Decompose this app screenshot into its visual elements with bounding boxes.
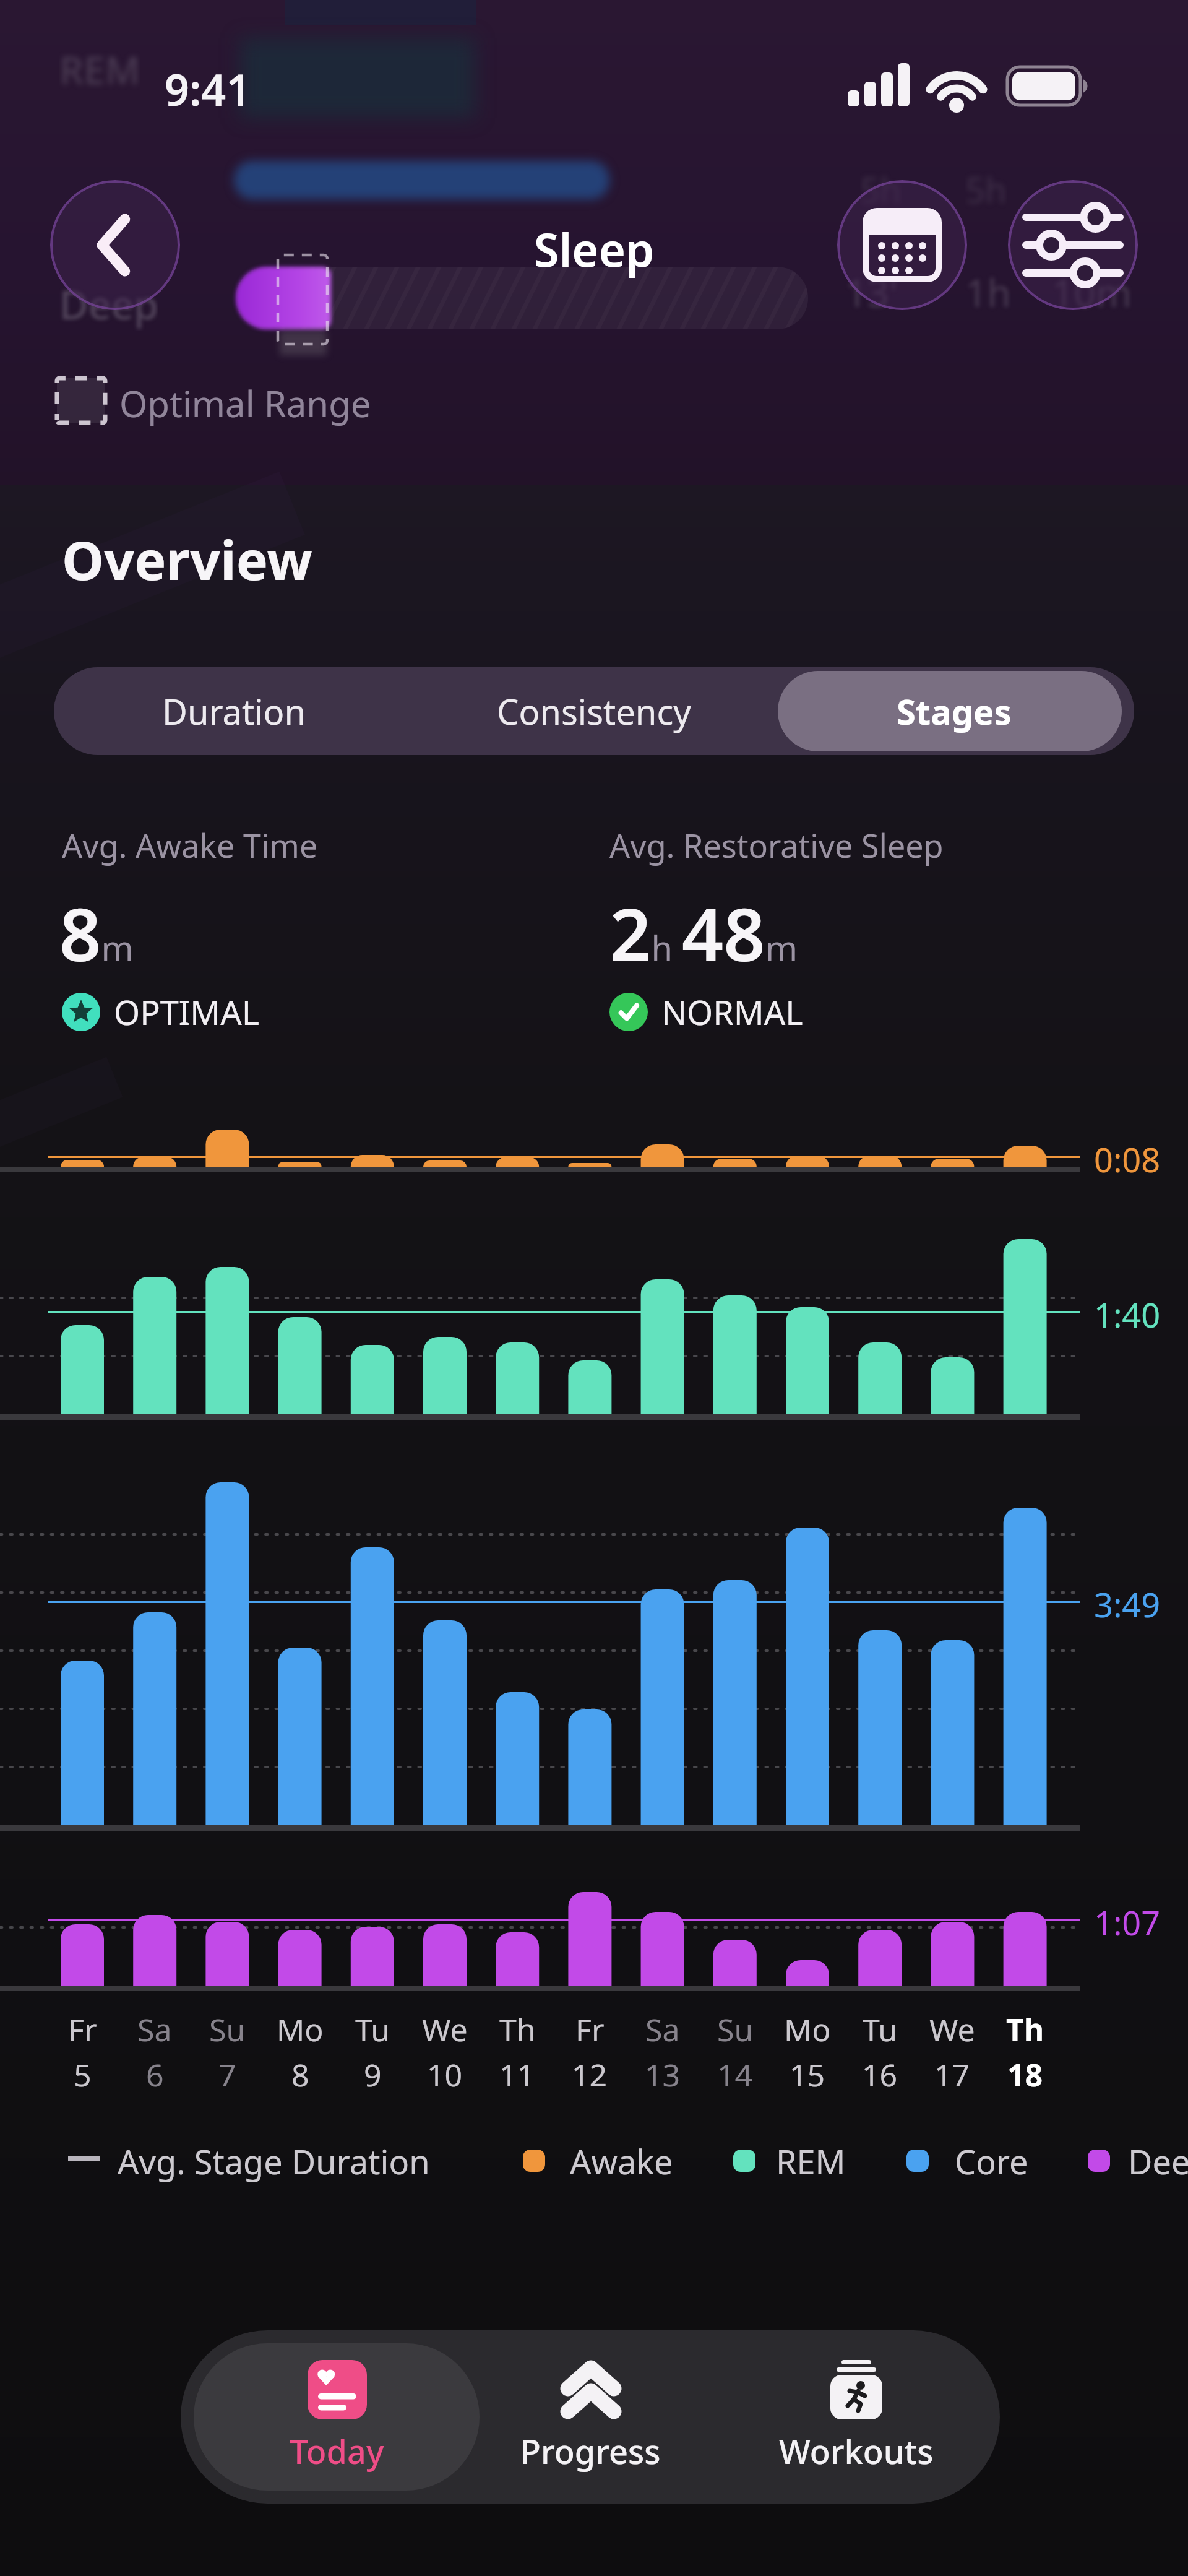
- button[interactable]: Workouts: [725, 2330, 988, 2504]
- staticText: 1h: [965, 266, 1011, 318]
- staticText: OPTIMAL: [114, 989, 259, 1035]
- staticText: Deep: [59, 277, 158, 331]
- button[interactable]: Progress: [467, 2330, 714, 2504]
- staticText: 9:41: [165, 59, 251, 118]
- staticText: Core: [955, 2138, 1028, 2184]
- staticText: 13': [845, 266, 898, 318]
- staticText: 13: [645, 2054, 681, 2096]
- staticText: 10: [427, 2054, 463, 2096]
- staticText: 5h: [860, 166, 902, 213]
- staticText: Stages: [897, 688, 1012, 735]
- button[interactable]: [1008, 180, 1138, 310]
- staticText: Awake: [570, 2138, 673, 2184]
- staticText: Sleep: [0, 218, 1188, 280]
- staticText: 3:49: [1094, 1581, 1161, 1627]
- staticText: 18: [1007, 2054, 1043, 2096]
- staticText: 0:08: [1094, 1136, 1161, 1182]
- staticText: Tu: [355, 2008, 390, 2051]
- staticText: 10m: [1052, 266, 1132, 318]
- staticText: Avg. Stage Duration: [118, 2138, 430, 2184]
- staticText: Su: [209, 2008, 246, 2051]
- staticText: 8: [291, 2054, 309, 2096]
- staticText: Mo: [277, 2008, 324, 2051]
- staticText: 15: [790, 2054, 825, 2096]
- staticText: 5h: [965, 166, 1007, 213]
- staticText: We: [929, 2008, 975, 2051]
- staticText: Consistency: [497, 688, 691, 735]
- staticText: We: [422, 2008, 468, 2051]
- button[interactable]: [778, 671, 1122, 751]
- staticText: Today: [290, 2428, 384, 2474]
- staticText: Su: [717, 2008, 754, 2051]
- staticText: Workouts: [779, 2428, 934, 2474]
- staticText: Sa: [137, 2008, 172, 2051]
- staticText: Avg. Awake Time: [62, 823, 318, 867]
- staticText: 2h 48m: [609, 883, 798, 983]
- staticText: 5: [74, 2054, 92, 2096]
- staticText: NORMAL: [661, 989, 803, 1035]
- staticText: Duration: [162, 688, 306, 735]
- staticText: 6: [146, 2054, 164, 2096]
- button[interactable]: [50, 180, 180, 310]
- button[interactable]: Today: [194, 2343, 480, 2491]
- staticText: Progress: [520, 2428, 661, 2474]
- staticText: Th: [499, 2008, 536, 2051]
- staticText: 1:07: [1094, 1900, 1161, 1945]
- staticText: Avg. Restorative Sleep: [609, 823, 944, 867]
- staticText: 16: [862, 2054, 898, 2096]
- staticText: 14: [717, 2054, 753, 2096]
- staticText: Overview: [62, 523, 312, 595]
- staticText: Fr: [68, 2008, 97, 2051]
- staticText: 9: [364, 2054, 382, 2096]
- staticText: 8m: [59, 883, 134, 983]
- staticText: REM: [59, 43, 140, 95]
- button[interactable]: [837, 180, 967, 310]
- staticText: 17: [934, 2054, 970, 2096]
- button[interactable]: Consistency: [414, 667, 774, 755]
- staticText: Fr: [575, 2008, 605, 2051]
- button[interactable]: Duration: [54, 667, 414, 755]
- staticText: 1:40: [1094, 1292, 1161, 1338]
- staticText: REM: [776, 2138, 846, 2184]
- staticText: Sa: [645, 2008, 680, 2051]
- staticText: Optimal Range: [119, 379, 371, 428]
- staticText: Deep: [1128, 2138, 1188, 2184]
- button[interactable]: Stages: [774, 667, 1134, 755]
- staticText: Tu: [863, 2008, 898, 2051]
- staticText: 7: [218, 2054, 236, 2096]
- staticText: 12: [572, 2054, 608, 2096]
- staticText: 11: [499, 2054, 535, 2096]
- staticText: Mo: [784, 2008, 831, 2051]
- staticText: Th: [1006, 2008, 1044, 2051]
